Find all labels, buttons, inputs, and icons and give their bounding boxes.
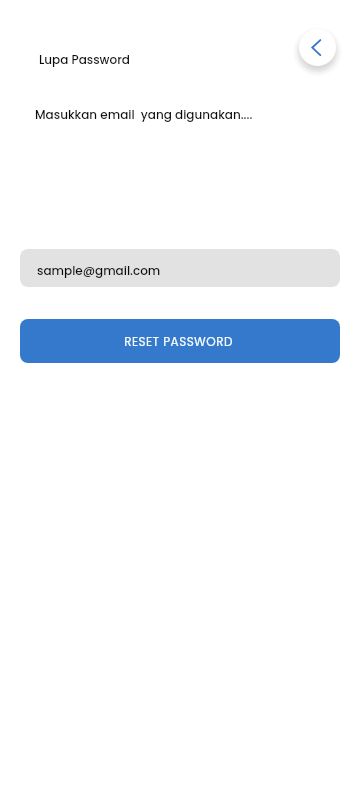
staticText: sample@gmail.com xyxy=(37,262,161,279)
button[interactable]: RESET PASSWORD xyxy=(20,319,340,363)
staticText: RESET PASSWORD xyxy=(124,333,233,350)
staticText: Lupa Password xyxy=(39,51,130,68)
staticText: Masukkan email yang digunakan.... xyxy=(35,106,253,123)
button[interactable]: sample@gmail.com xyxy=(20,249,340,287)
button[interactable]: Back xyxy=(299,29,336,66)
